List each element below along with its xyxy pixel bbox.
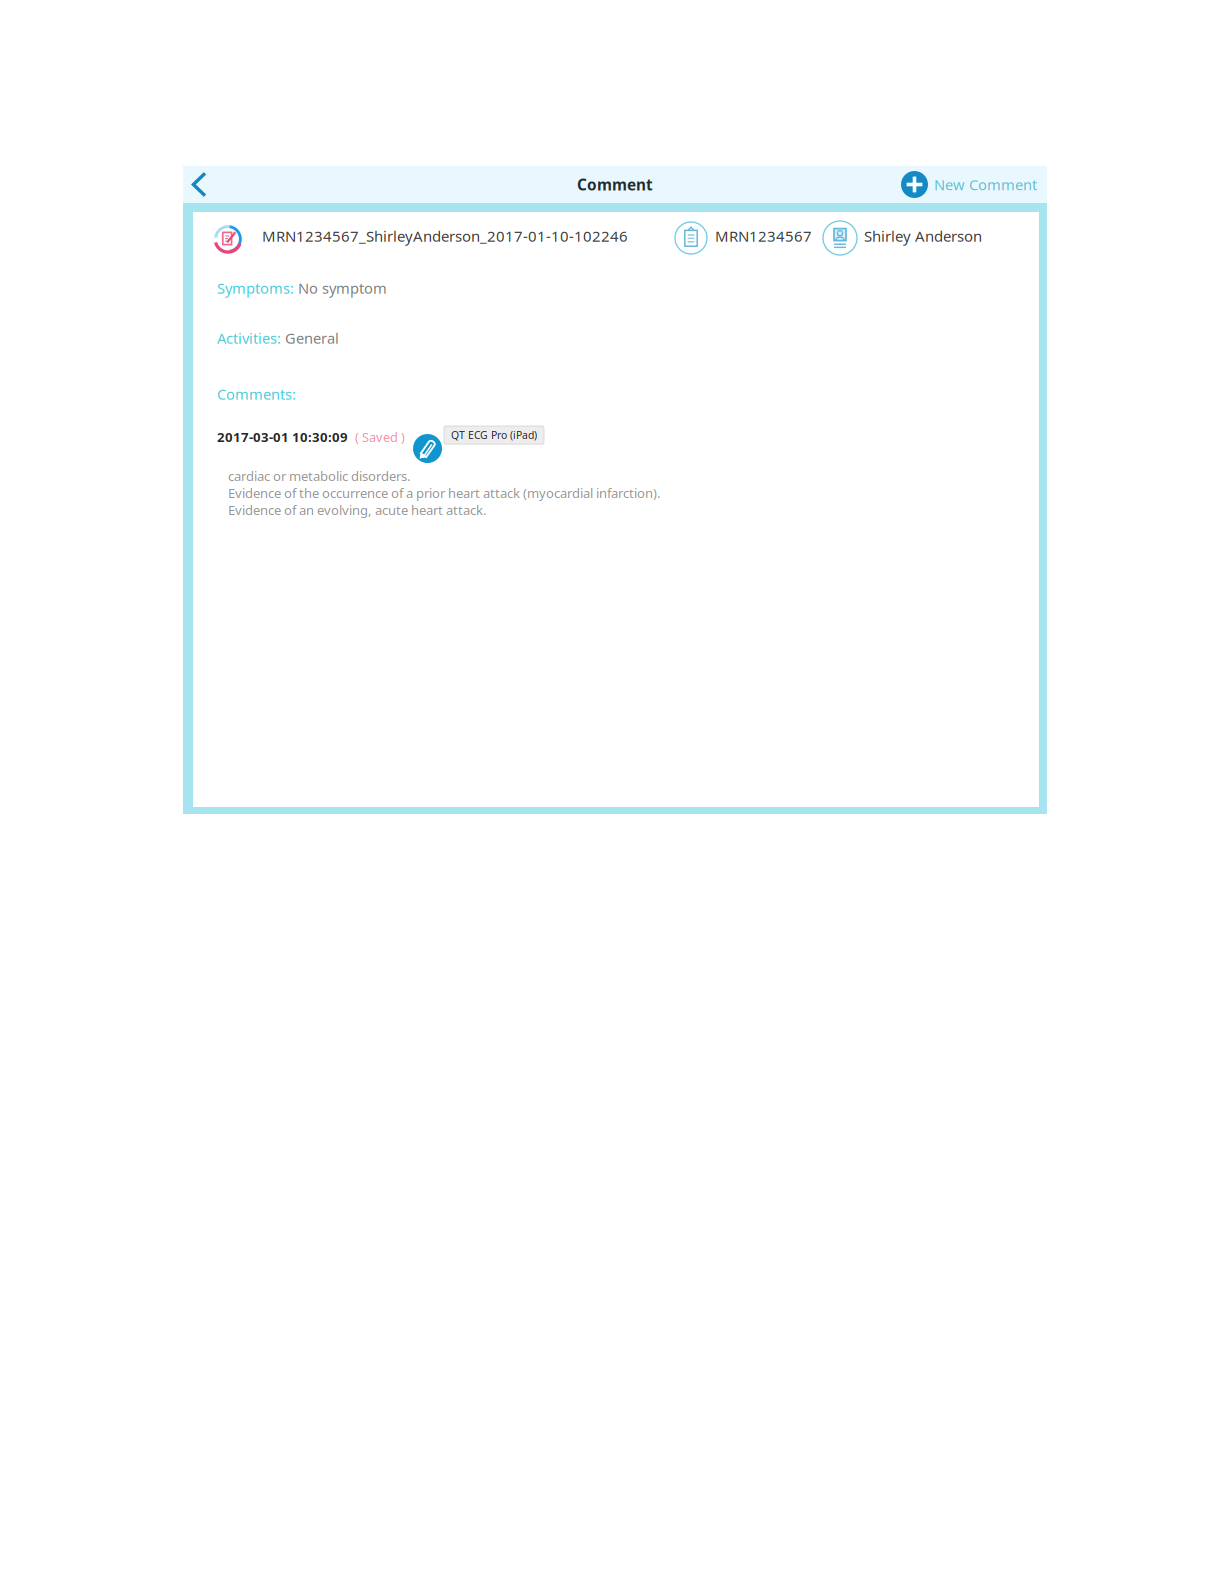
staticText: QT ECG Pro (iPad) — [451, 428, 537, 442]
staticText: New Comment — [934, 174, 1037, 194]
staticText: MRN1234567 — [715, 226, 812, 246]
staticText: MRN1234567_ShirleyAnderson_2017-01-10-10… — [262, 226, 628, 246]
staticText: Activities: — [217, 328, 281, 348]
staticText: General — [285, 328, 339, 348]
staticText: Symptoms: — [217, 278, 294, 298]
staticText: Comment — [577, 174, 653, 195]
button[interactable]: Shirley Anderson — [823, 221, 982, 255]
button[interactable]: MRN1234567_ShirleyAnderson_2017-01-10-10… — [213, 224, 628, 254]
staticText: ( Saved ) — [355, 428, 405, 446]
staticText: No symptom — [298, 278, 387, 298]
staticText: 2017-03-01 10:30:09 — [217, 428, 348, 446]
staticText: Evidence of an evolving, acute heart att… — [228, 501, 487, 519]
button[interactable]: Back — [176, 166, 222, 203]
staticText: Shirley Anderson — [864, 226, 982, 246]
button[interactable]: New Comment — [901, 166, 1037, 203]
button[interactable]: Edit comment — [413, 434, 442, 463]
button[interactable]: MRN1234567 — [675, 222, 812, 254]
staticText: Comments: — [217, 384, 296, 404]
staticText: Evidence of the occurrence of a prior he… — [228, 484, 661, 502]
staticText: cardiac or metabolic disorders. — [228, 467, 411, 485]
